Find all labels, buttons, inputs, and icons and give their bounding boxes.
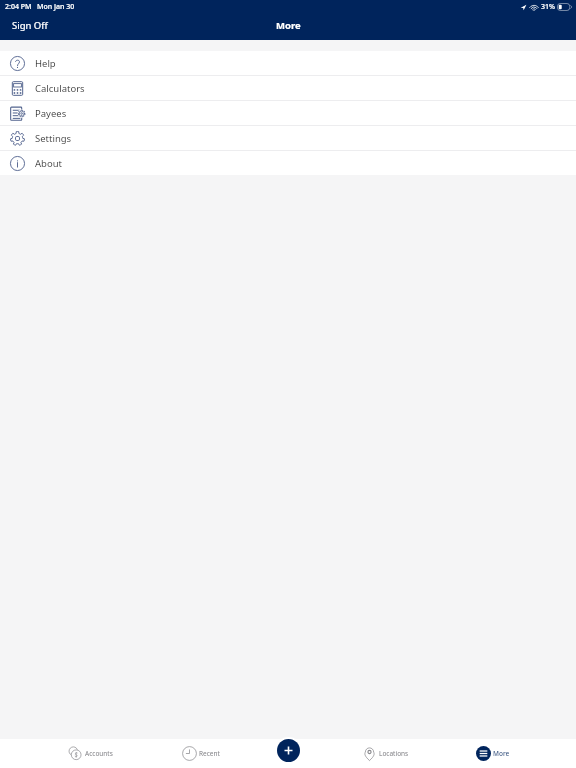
button[interactable]: About (0, 151, 576, 175)
button[interactable]: Recent (180, 742, 222, 765)
staticText: More (493, 749, 510, 758)
staticText: Payees (35, 107, 67, 120)
staticText: Accounts (85, 749, 113, 758)
button[interactable]: Sign Off (0, 14, 60, 37)
button[interactable]: Locations (360, 742, 411, 765)
staticText: Help (35, 57, 56, 70)
staticText: More (276, 19, 301, 32)
button[interactable]: Add (277, 739, 300, 762)
button[interactable]: Accounts (66, 742, 115, 765)
staticText: About (35, 157, 62, 170)
button[interactable]: Payees (0, 101, 576, 125)
staticText: 31% (541, 2, 555, 12)
button[interactable]: More (474, 742, 512, 765)
button[interactable]: Settings (0, 126, 576, 150)
button[interactable]: Help (0, 51, 576, 75)
button[interactable]: Calculators (0, 76, 576, 100)
staticText: Mon Jan 30 (37, 2, 75, 12)
staticText: Recent (199, 749, 220, 758)
staticText: Settings (35, 132, 72, 145)
staticText: 2:04 PM (5, 2, 32, 12)
staticText: Locations (379, 749, 409, 758)
staticText: Sign Off (12, 19, 48, 32)
staticText: Calculators (35, 82, 85, 95)
